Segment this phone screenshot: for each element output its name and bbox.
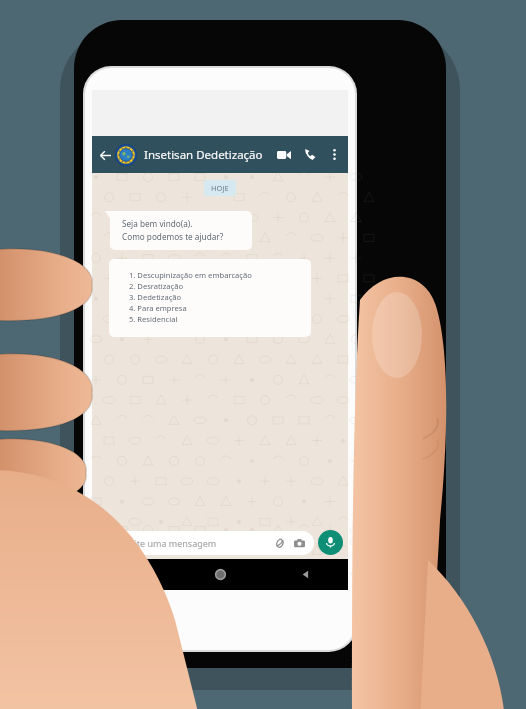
staticText: 5. Residencial: [129, 314, 178, 324]
staticText: Insetisan Dedetização: [144, 147, 263, 163]
button[interactable]: HOJE: [204, 180, 236, 196]
button[interactable]: More options: [323, 143, 346, 166]
staticText: Como podemos te ajudar?: [122, 231, 224, 242]
staticText: Digite uma mensagem: [120, 537, 217, 549]
staticText: 1. Descupinização em embarcação: [129, 270, 252, 280]
button[interactable]: Back: [263, 559, 348, 590]
button[interactable]: Camera: [292, 536, 307, 551]
button[interactable]: Home: [178, 559, 263, 590]
button[interactable]: Recent apps: [92, 559, 178, 590]
staticText: HOJE: [211, 183, 229, 193]
button[interactable]: Record voice message: [318, 530, 343, 555]
staticText: 3. Dedetização: [129, 292, 182, 302]
staticText: 2. Desratização: [129, 281, 184, 291]
button[interactable]: Video call: [272, 143, 295, 166]
button[interactable]: Contact photo: [115, 144, 137, 166]
button[interactable]: Voice call: [299, 143, 322, 166]
button[interactable]: Attach file: [272, 536, 287, 551]
button[interactable]: Digite uma mensagem: [97, 531, 314, 555]
staticText: 4. Para empresa: [129, 303, 187, 313]
staticText: Seja bem vindo(a).: [122, 218, 193, 229]
button[interactable]: Back: [95, 145, 115, 165]
